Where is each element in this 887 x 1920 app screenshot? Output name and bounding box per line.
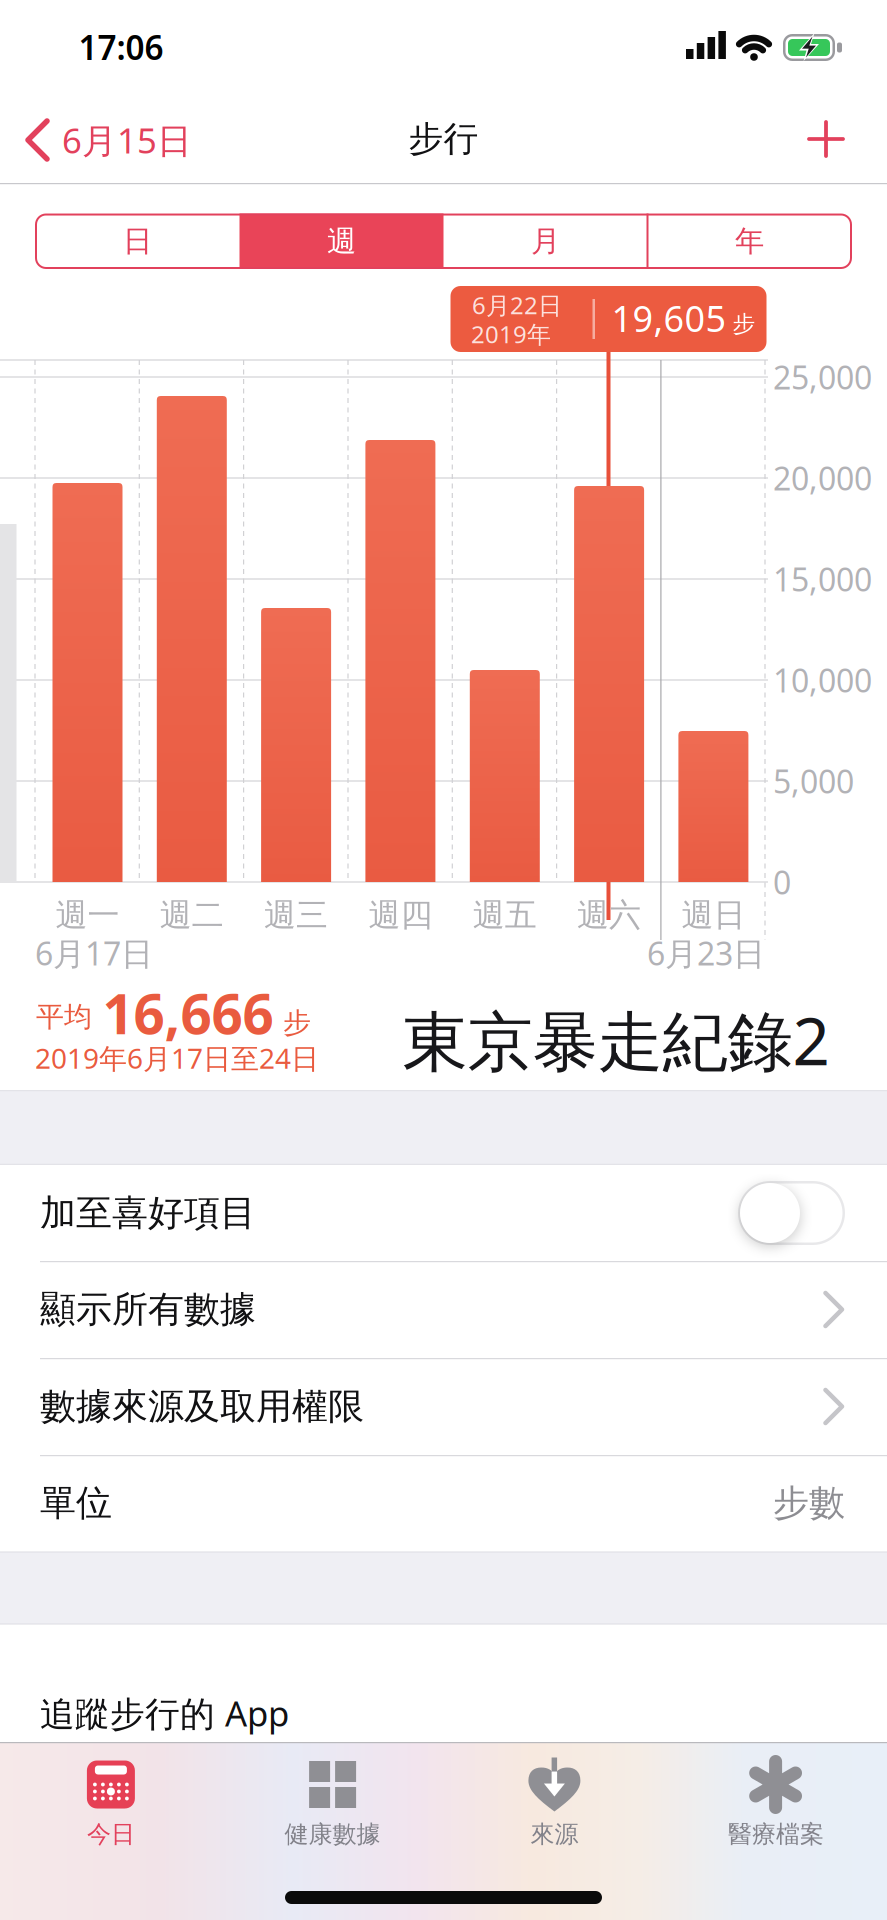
button[interactable]: 日 bbox=[35, 213, 239, 269]
staticText: 數據來源及取用權限 bbox=[40, 1384, 364, 1429]
staticText: 6月23日 bbox=[647, 932, 765, 974]
staticText: 6月15日 bbox=[62, 117, 192, 163]
button[interactable]: 來源 bbox=[444, 1742, 664, 1919]
staticText: 16,666 bbox=[102, 977, 273, 1049]
staticText: 單位 bbox=[40, 1481, 112, 1525]
staticText: 2019年6月17日至24日 bbox=[35, 1039, 319, 1077]
button[interactable]: 今日 bbox=[1, 1742, 221, 1919]
staticText: 追蹤步行的 App bbox=[40, 1690, 289, 1736]
staticText: 步 bbox=[732, 310, 755, 338]
staticText: 5,000 bbox=[773, 760, 854, 802]
staticText: 10,000 bbox=[773, 659, 872, 701]
staticText: 今日 bbox=[87, 1819, 135, 1849]
staticText: 週六 bbox=[577, 895, 641, 935]
button[interactable]: Add Data Point bbox=[809, 122, 843, 156]
staticText: 步 bbox=[283, 1006, 311, 1040]
button[interactable]: 醫療檔案 bbox=[666, 1742, 886, 1919]
button[interactable]: 6月15日 bbox=[25, 107, 245, 173]
staticText: 17:06 bbox=[78, 25, 163, 69]
button[interactable]: 單位 bbox=[0, 1455, 887, 1551]
staticText: 20,000 bbox=[773, 457, 872, 499]
button[interactable]: 週 bbox=[239, 213, 443, 269]
staticText: 週三 bbox=[264, 895, 328, 935]
staticText: 19,605 bbox=[611, 294, 726, 342]
staticText: 年 bbox=[735, 223, 764, 259]
staticText: 東京暴走紀錄2 bbox=[402, 997, 829, 1083]
staticText: 0 bbox=[773, 861, 791, 903]
button[interactable]: 顯示所有數據 bbox=[0, 1261, 887, 1357]
staticText: 6月22日 bbox=[472, 289, 562, 321]
staticText: 週 bbox=[327, 223, 356, 259]
staticText: 週五 bbox=[473, 895, 537, 935]
staticText: 週一 bbox=[55, 895, 119, 935]
staticText: 週日 bbox=[681, 895, 745, 935]
staticText: 步行 bbox=[408, 118, 478, 160]
staticText: 2019年 bbox=[471, 318, 551, 350]
staticText: 加至喜好項目 bbox=[40, 1191, 256, 1235]
staticText: 25,000 bbox=[773, 356, 872, 398]
button[interactable]: 年 bbox=[647, 213, 851, 269]
staticText: 平均 bbox=[36, 1000, 92, 1034]
staticText: 步數 bbox=[773, 1481, 845, 1525]
staticText: 6月17日 bbox=[35, 932, 153, 974]
staticText: 健康數據 bbox=[285, 1819, 381, 1849]
staticText: 15,000 bbox=[773, 558, 872, 600]
staticText: 月 bbox=[531, 223, 560, 259]
staticText: 週四 bbox=[368, 895, 432, 935]
staticText: 週二 bbox=[160, 895, 224, 935]
staticText: 顯示所有數據 bbox=[40, 1287, 256, 1332]
button[interactable]: 加至喜好項目 bbox=[0, 1165, 887, 1261]
staticText: 日 bbox=[123, 223, 152, 259]
button[interactable]: 健康數據 bbox=[223, 1742, 443, 1919]
button[interactable]: 月 bbox=[443, 213, 647, 269]
staticText: 來源 bbox=[530, 1819, 578, 1849]
staticText: 醫療檔案 bbox=[728, 1819, 824, 1849]
button[interactable]: 數據來源及取用權限 bbox=[0, 1358, 887, 1454]
